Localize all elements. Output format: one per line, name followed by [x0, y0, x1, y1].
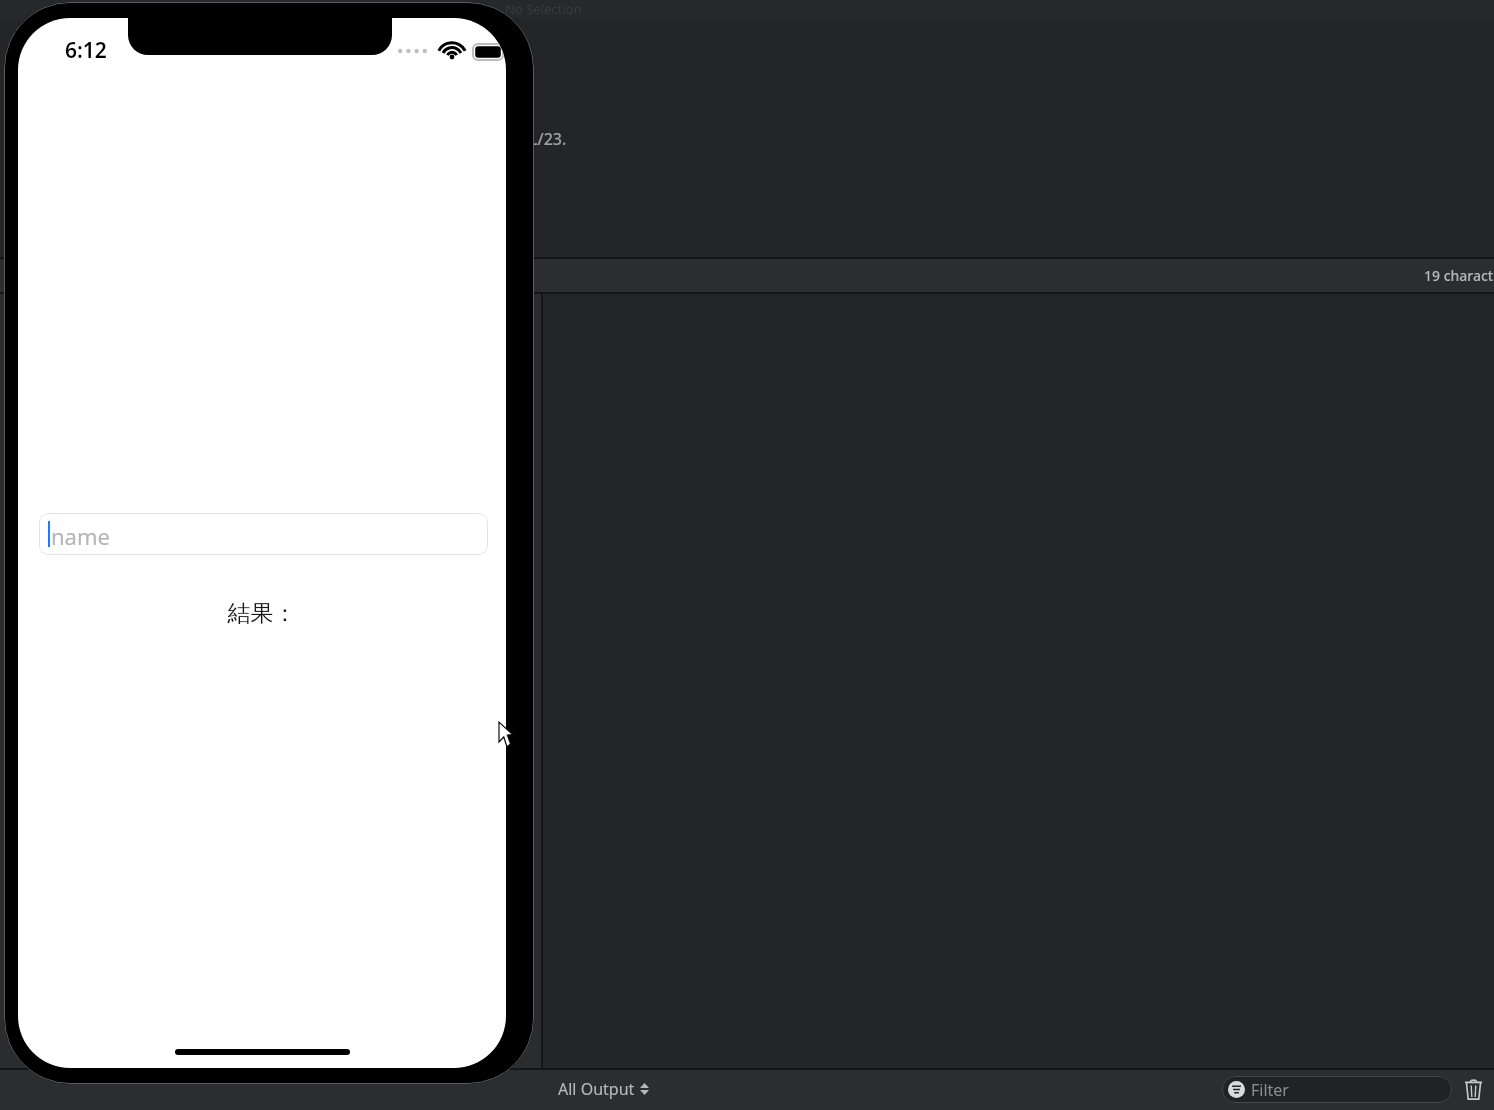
button[interactable]: Clear console: [1458, 1074, 1488, 1104]
staticText: No Selection: [505, 0, 582, 18]
staticText: 19 characters: [1424, 266, 1494, 285]
staticText: 6:12: [65, 36, 107, 65]
staticText: name: [51, 521, 110, 551]
button[interactable]: name: [39, 513, 488, 555]
staticText: Filter: [1251, 1079, 1289, 1101]
staticText: L/23.: [529, 128, 567, 150]
staticText: All Output: [558, 1078, 635, 1100]
staticText: 結果：: [18, 599, 506, 628]
button[interactable]: All Output: [556, 1074, 651, 1104]
button[interactable]: Filter: [1222, 1076, 1452, 1103]
